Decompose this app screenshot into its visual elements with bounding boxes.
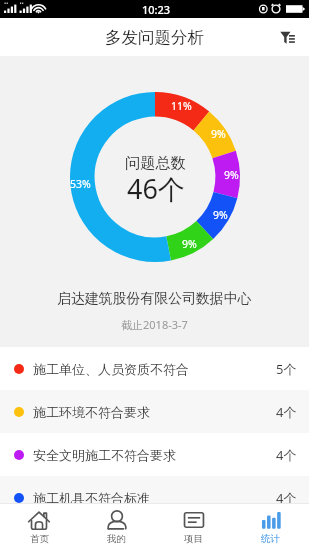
staticText: 9% [224, 168, 239, 182]
staticText: 9% [213, 208, 228, 222]
staticText: 施工环境不符合要求 [33, 404, 150, 420]
button[interactable]: Projects [155, 503, 232, 550]
staticText: 问题总数 [125, 153, 186, 172]
staticText: 10:23 [142, 2, 171, 17]
button[interactable]: Home [0, 503, 78, 550]
button[interactable]: 施工单位、人员资质不符合 [0, 347, 309, 390]
staticText: 5个 [276, 360, 297, 378]
staticText: 4个 [276, 446, 297, 464]
staticText: 4个 [276, 403, 297, 421]
staticText: 4个 [276, 489, 297, 507]
button[interactable]: Filter [272, 22, 302, 52]
staticText: 首页 [30, 533, 49, 545]
staticText: 施工机具不符合标准 [33, 490, 150, 506]
staticText: 46个 [127, 170, 185, 207]
staticText: 施工单位、人员资质不符合 [33, 361, 189, 377]
button[interactable]: Statistics [232, 503, 309, 550]
button[interactable]: 施工机具不符合标准 [0, 476, 309, 519]
staticText: 多发问题分析 [105, 27, 204, 48]
staticText: 9% [211, 127, 226, 141]
staticText: 项目 [184, 533, 203, 545]
staticText: 启达建筑股份有限公司数据中心 [57, 290, 252, 308]
staticText: 9% [182, 237, 197, 251]
button[interactable]: 安全文明施工不符合要求 [0, 433, 309, 476]
staticText: 11% [171, 99, 192, 113]
staticText: 统计 [261, 533, 280, 545]
button[interactable]: Profile [78, 503, 155, 550]
staticText: 安全文明施工不符合要求 [33, 447, 176, 463]
staticText: 53% [70, 177, 91, 191]
staticText: 我的 [107, 533, 126, 545]
staticText: 截止2018-3-7 [121, 317, 188, 332]
button[interactable]: 施工环境不符合要求 [0, 390, 309, 433]
